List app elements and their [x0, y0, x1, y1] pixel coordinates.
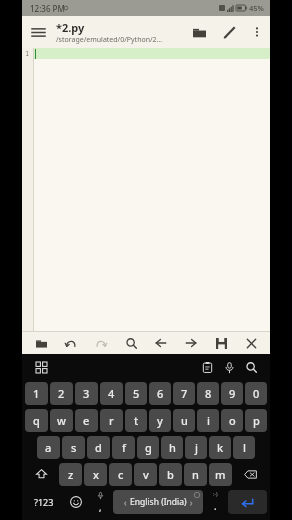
button[interactable]: Shift — [25, 463, 57, 486]
staticText: 12:36 PM — [30, 3, 65, 14]
button[interactable]: 0 — [245, 382, 267, 405]
staticText: t — [134, 413, 139, 428]
button[interactable]: i — [197, 409, 219, 432]
button[interactable]: z — [59, 463, 82, 486]
staticText: l — [243, 440, 246, 455]
staticText: 2 — [58, 386, 65, 401]
staticText: c — [118, 467, 124, 482]
staticText: z — [68, 467, 74, 482]
staticText: 7 — [181, 386, 188, 401]
staticText: /storage/emulated/0/Python/2… — [56, 35, 163, 45]
button[interactable]: y — [149, 409, 171, 432]
button[interactable]: More options — [244, 19, 270, 45]
button[interactable]: b — [159, 463, 182, 486]
button[interactable]: m — [209, 463, 232, 486]
button[interactable]: 5 — [125, 382, 147, 405]
button[interactable]: k — [209, 436, 231, 459]
staticText: q — [33, 413, 40, 428]
staticText: y — [157, 413, 163, 428]
button[interactable]: 1 — [25, 382, 48, 405]
staticText: . — [214, 499, 217, 513]
button[interactable]: Menu — [22, 16, 54, 48]
button[interactable]: 9 — [221, 382, 243, 405]
button[interactable]: q — [25, 409, 48, 432]
staticText: r — [109, 413, 114, 428]
staticText: English (India) — [130, 496, 187, 508]
staticText: s — [71, 440, 77, 455]
button[interactable]: Save — [210, 332, 232, 354]
button[interactable]: Edit — [214, 17, 244, 47]
button[interactable]: p — [245, 409, 267, 432]
button[interactable]: Search — [120, 332, 142, 354]
staticText: u — [181, 413, 188, 428]
staticText: ‹ — [124, 497, 127, 508]
button[interactable]: a — [37, 436, 60, 459]
staticText: 3 — [83, 386, 90, 401]
button[interactable]: w — [50, 409, 73, 432]
button[interactable]: Back — [150, 332, 172, 354]
button[interactable]: Backspace — [234, 463, 267, 486]
button[interactable]: 4 — [100, 382, 123, 405]
staticText: 45% — [249, 3, 264, 13]
staticText: v — [143, 467, 149, 482]
staticText: 0 — [253, 386, 260, 401]
button[interactable]: t — [125, 409, 147, 432]
button[interactable]: c — [109, 463, 132, 486]
staticText: e — [83, 413, 90, 428]
button[interactable]: u — [173, 409, 195, 432]
staticText: 1 — [33, 386, 40, 401]
button[interactable]: x — [84, 463, 107, 486]
button[interactable]: Period — [205, 490, 226, 514]
staticText: 9 — [229, 386, 236, 401]
staticText: f — [122, 440, 126, 455]
button[interactable]: l — [233, 436, 255, 459]
button[interactable]: Clipboard — [196, 356, 218, 378]
button[interactable]: Close — [240, 332, 262, 354]
button[interactable]: g — [137, 436, 159, 459]
button[interactable]: ?123 — [25, 490, 62, 514]
staticText: m — [215, 467, 226, 482]
button[interactable]: j — [185, 436, 207, 459]
button[interactable]: Emoji — [64, 490, 88, 514]
button[interactable]: f — [112, 436, 135, 459]
button[interactable]: 7 — [173, 382, 195, 405]
staticText: 1 — [25, 49, 30, 59]
staticText: i — [207, 413, 210, 428]
button[interactable]: Toolbar — [30, 356, 52, 378]
staticText: g — [145, 440, 152, 455]
button[interactable]: 3 — [75, 382, 98, 405]
button[interactable]: Redo — [90, 332, 112, 354]
button[interactable]: h — [161, 436, 183, 459]
button[interactable]: s — [62, 436, 85, 459]
button[interactable]: 2 — [50, 382, 73, 405]
button[interactable]: Search — [240, 356, 262, 378]
staticText: d — [95, 440, 102, 455]
staticText: , — [99, 501, 102, 513]
staticText: 4 — [108, 386, 115, 401]
button[interactable]: Open folder — [184, 17, 214, 47]
staticText: j — [195, 440, 198, 455]
button[interactable]: Forward — [180, 332, 202, 354]
button[interactable]: Comma — [90, 490, 111, 514]
button[interactable]: Voice input — [218, 356, 240, 378]
staticText: :-) — [213, 491, 218, 498]
staticText: 8 — [205, 386, 212, 401]
staticText: h — [169, 440, 176, 455]
button[interactable]: n — [184, 463, 207, 486]
button[interactable]: e — [75, 409, 98, 432]
staticText: n — [192, 467, 199, 482]
staticText: o — [229, 413, 236, 428]
button[interactable]: d — [87, 436, 110, 459]
staticText: a — [45, 440, 52, 455]
button[interactable]: o — [221, 409, 243, 432]
button[interactable]: Open file — [30, 332, 52, 354]
button[interactable]: 8 — [197, 382, 219, 405]
staticText: ?123 — [34, 496, 54, 508]
button[interactable]: ‹ — [113, 490, 203, 514]
button[interactable]: r — [100, 409, 123, 432]
button[interactable]: v — [134, 463, 157, 486]
button[interactable]: 6 — [149, 382, 171, 405]
staticText: k — [217, 440, 224, 455]
button[interactable]: Undo — [60, 332, 82, 354]
button[interactable]: Enter — [228, 490, 267, 514]
